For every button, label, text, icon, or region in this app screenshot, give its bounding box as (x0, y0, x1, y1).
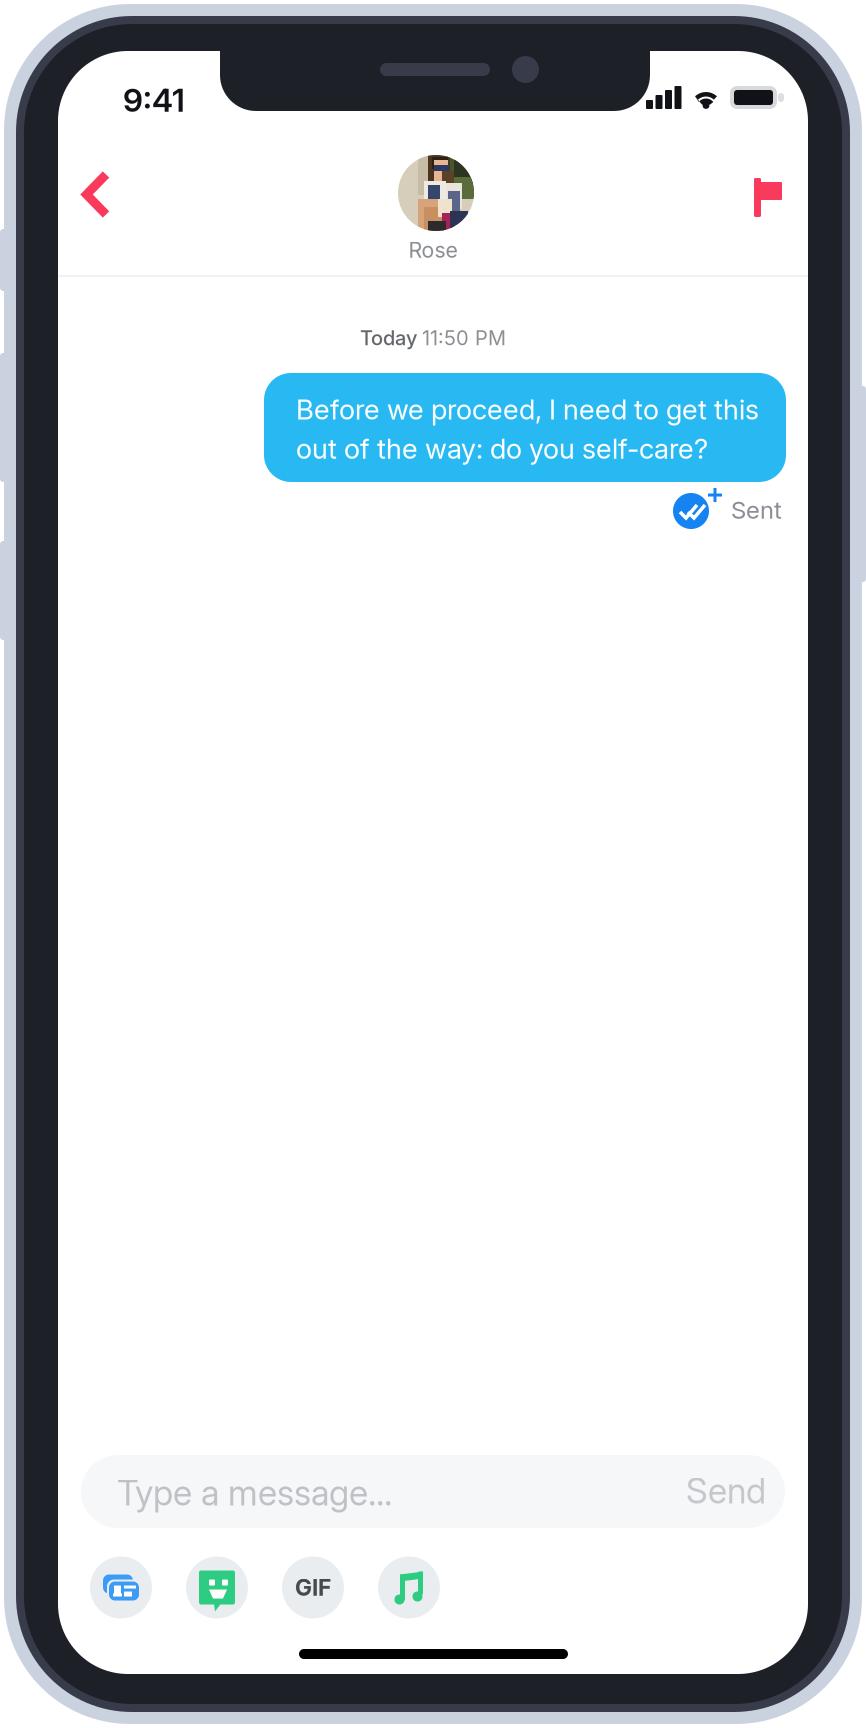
staticText: GIF (295, 1574, 331, 1601)
button[interactable]: Report (698, 136, 808, 252)
staticText: Type a message... (117, 1472, 392, 1514)
staticText: Send (686, 1470, 766, 1512)
button[interactable]: Music (378, 1556, 440, 1618)
button[interactable]: Back (58, 144, 146, 244)
staticText: Today (360, 326, 417, 350)
button[interactable]: GIF (282, 1556, 344, 1618)
staticText: Before we proceed, I need to get this ou… (296, 393, 759, 465)
button[interactable]: Stickers (186, 1556, 248, 1618)
button[interactable]: Type a message... (81, 1455, 785, 1528)
staticText: 11:50 PM (422, 326, 506, 350)
staticText: 9:41 (123, 81, 185, 119)
staticText: Sent (731, 495, 782, 524)
button[interactable]: Apps (90, 1556, 152, 1618)
staticText: Rose (408, 237, 457, 263)
